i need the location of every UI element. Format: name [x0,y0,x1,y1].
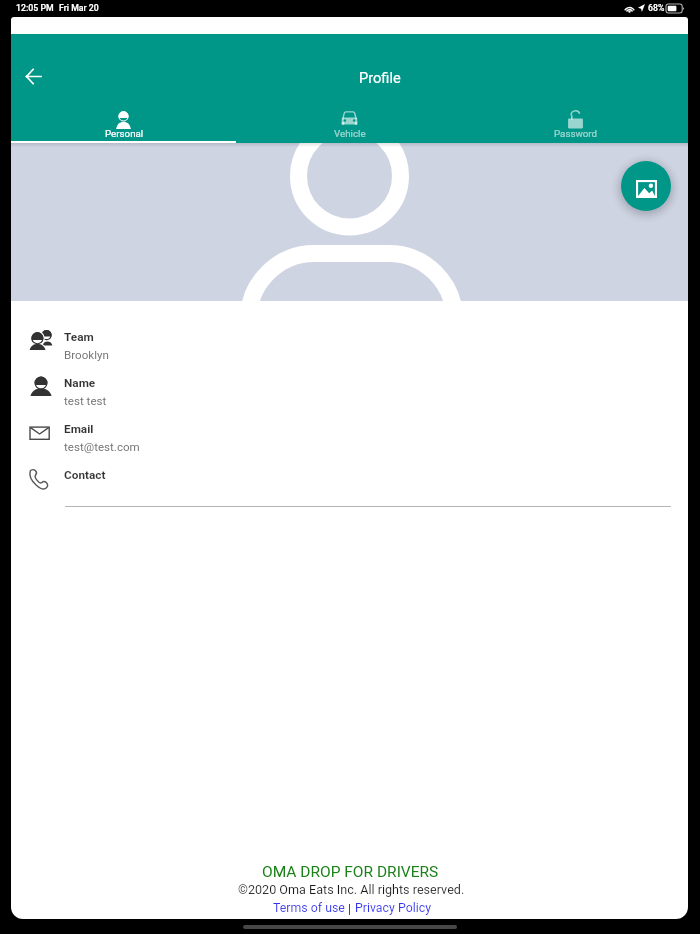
staticText: Email [64,422,94,436]
staticText: Profile [359,69,401,86]
staticText: Fri Mar 20 [59,3,99,13]
button[interactable]: Change profile photo [621,161,671,211]
staticText: Team [64,330,94,344]
button[interactable] [11,322,688,368]
staticText: Brooklyn [64,348,109,362]
staticText: OMA DROP FOR DRIVERS [262,863,439,881]
staticText: Name [64,376,96,390]
staticText: Privacy Policy [355,901,431,915]
button[interactable] [11,460,688,506]
button[interactable]: Vehicle [236,100,462,143]
button[interactable]: Personal [11,100,236,143]
staticText: Password [554,128,598,139]
button[interactable] [11,414,688,460]
staticText: ©2020 Oma Eats Inc. All rights reserved. [238,882,465,897]
staticText: Terms of use [273,901,345,915]
staticText: test@test.com [64,440,140,454]
staticText: 12:05 PM [16,3,54,13]
staticText: Contact [64,468,106,482]
staticText: 68% [648,3,665,13]
staticText: Vehicle [334,128,366,139]
staticText: test test [64,394,107,408]
staticText: | [345,901,355,916]
button[interactable] [11,368,688,414]
staticText: Personal [105,128,144,139]
button[interactable]: Back [13,56,53,96]
button[interactable]: Password [462,100,688,143]
button[interactable]: Privacy Policy [355,901,431,915]
button[interactable]: Terms of use [273,901,345,915]
